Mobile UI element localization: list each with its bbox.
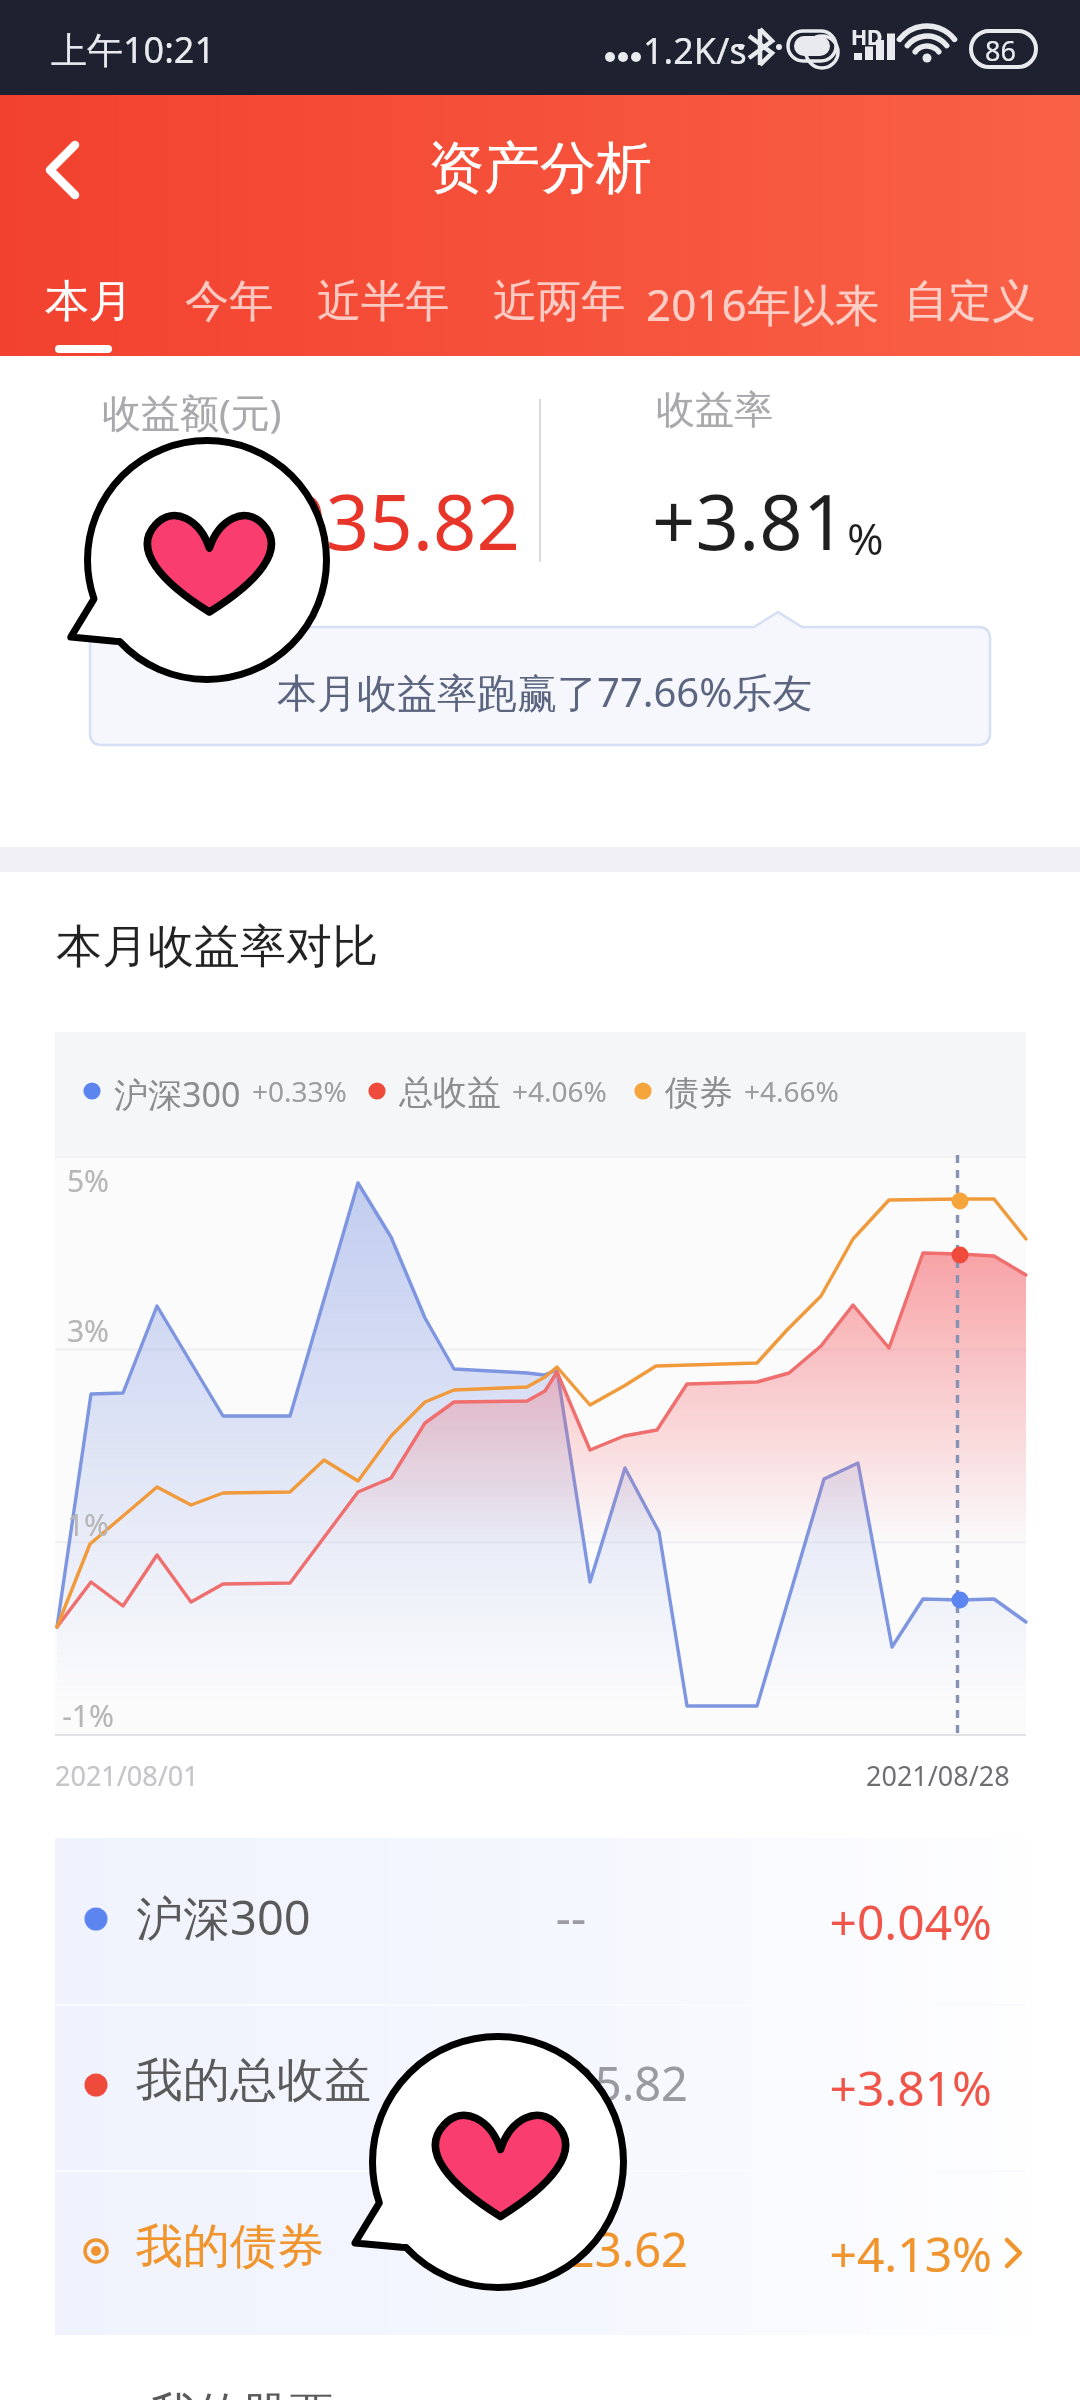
staticText: 2021/08/28 (866, 1757, 1010, 1794)
staticText: 今年 (185, 274, 273, 329)
staticText: 上午10:21 (51, 25, 216, 74)
staticText: 2021/08/01 (55, 1757, 199, 1794)
staticText: 86 (985, 32, 1016, 69)
button[interactable]: 今年 (172, 274, 286, 356)
staticText: +0.33% (252, 1072, 347, 1110)
staticText: -- (451, 1885, 691, 1949)
button[interactable]: 返回 (4, 103, 114, 213)
staticText: % (847, 508, 884, 568)
staticText: 收益率 (656, 385, 773, 434)
staticText: 1% (55, 1504, 121, 1545)
button[interactable]: 自定义 (891, 274, 1048, 356)
staticText: 我的股票 (150, 2386, 334, 2400)
staticText: 自定义 (904, 274, 1036, 329)
staticText: 我的债券 (136, 2217, 324, 2276)
staticText: 3% (55, 1310, 121, 1351)
staticText: 沪深300 (136, 1885, 311, 1949)
staticText: 1,935.82 (0, 469, 520, 573)
button[interactable]: 我的债券 (55, 2170, 1026, 2336)
button[interactable]: 近半年 (304, 274, 461, 356)
staticText: 收益额(元) (102, 385, 282, 438)
staticText: 本月 (45, 274, 133, 329)
button[interactable]: 沪深300 (55, 1838, 1026, 2004)
button[interactable]: 近两年 (480, 274, 637, 356)
staticText: +4.06% (512, 1072, 607, 1110)
staticText: 1,935.82 (388, 2051, 688, 2115)
staticText: +3.81% (752, 2055, 992, 2120)
staticText: 近两年 (493, 274, 625, 329)
button[interactable] (542, 376, 1080, 596)
staticText: +4.66% (744, 1072, 839, 1110)
staticText: +3.81 (652, 469, 847, 573)
staticText: 本月收益率对比 (56, 918, 378, 976)
staticText: -1% (55, 1695, 121, 1736)
staticText: +4.13% (752, 2221, 992, 2286)
staticText: +0.04% (752, 1889, 992, 1954)
staticText: 1,123.62 (388, 2217, 688, 2281)
staticText: 5% (55, 1160, 121, 1201)
button[interactable]: 2016年以来 (633, 274, 892, 356)
button[interactable]: 本月 (32, 274, 146, 356)
button[interactable]: 我的总收益 (55, 2004, 1026, 2170)
staticText: 本月收益率跑赢了77.66%乐友 (277, 664, 813, 719)
staticText: 债券 (665, 1071, 733, 1111)
staticText: 沪深300 (114, 1071, 241, 1111)
staticText: 1.2K/s (643, 26, 747, 75)
staticText: 资产分析 (0, 133, 1080, 204)
staticText: 我的总收益 (136, 2051, 371, 2110)
staticText: HD (851, 23, 883, 52)
staticText: 近半年 (317, 274, 449, 329)
staticText: 总收益 (399, 1071, 501, 1111)
button[interactable]: 本月收益率跑赢了77.66%乐友 (90, 612, 990, 745)
staticText: 2016年以来 (646, 274, 879, 334)
button[interactable] (0, 376, 538, 596)
